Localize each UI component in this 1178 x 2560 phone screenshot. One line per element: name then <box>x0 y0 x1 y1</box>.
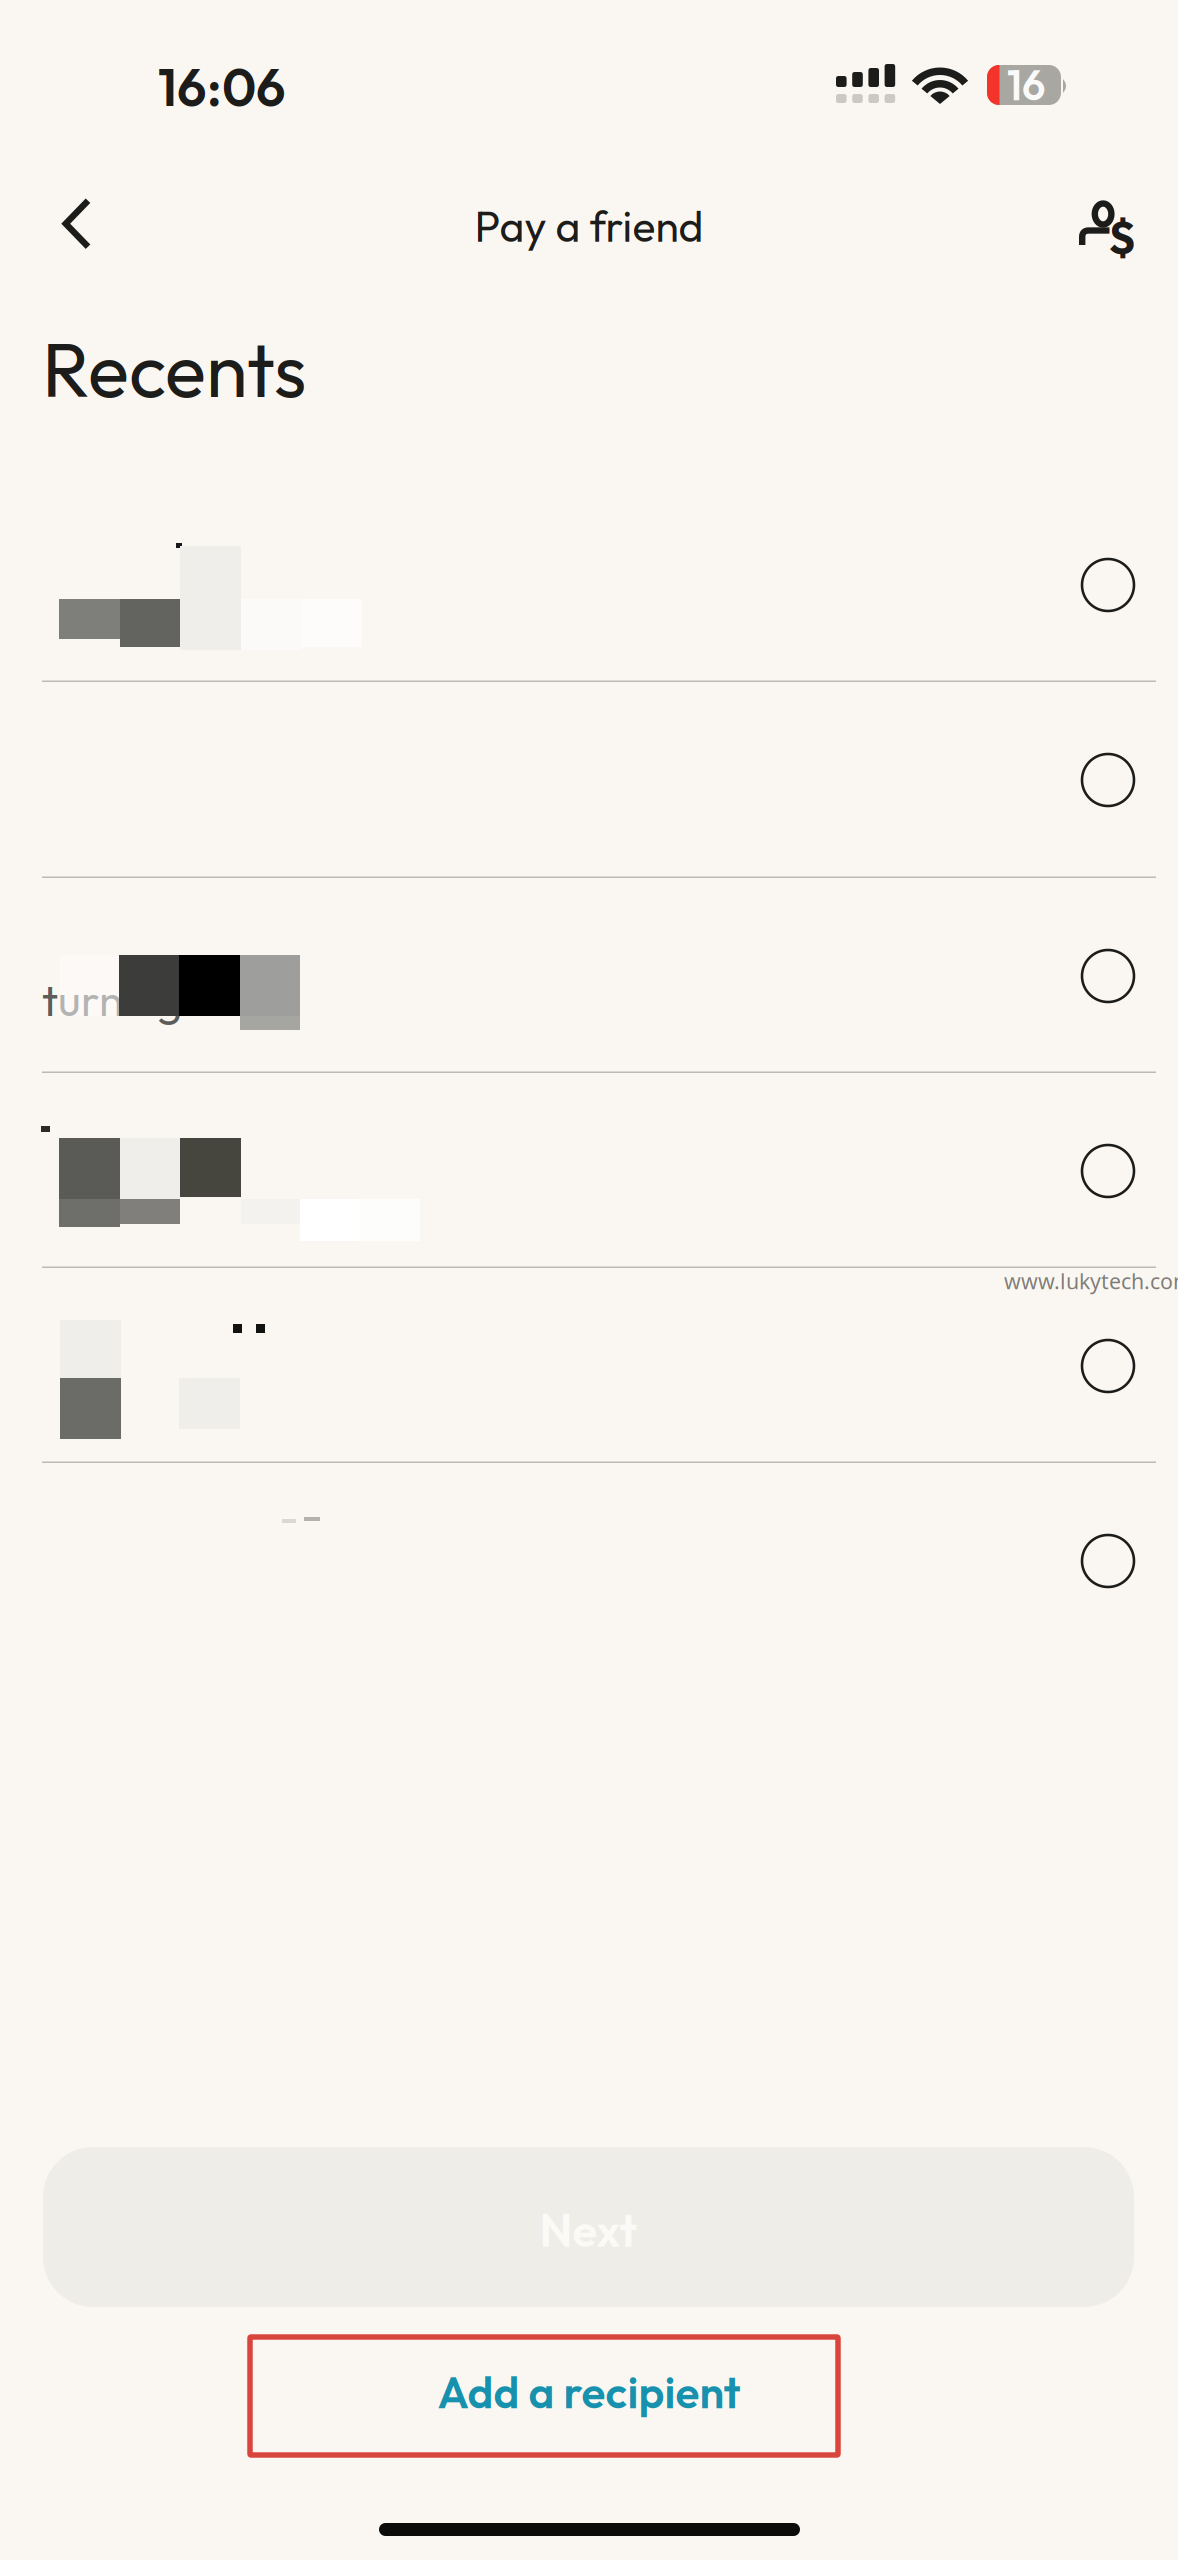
button[interactable]: Recipient 1 <box>0 486 1178 681</box>
button[interactable]: Recipient 6 <box>0 1462 1178 1657</box>
staticText: Add a recipient <box>437 2364 740 2420</box>
staticText: Recents <box>42 321 306 417</box>
staticText: 16:06 <box>158 54 286 119</box>
staticText: turning <box>42 972 182 1027</box>
button[interactable]: Pay a new recipient <box>1052 176 1162 280</box>
button[interactable]: Recipient 5 <box>0 1267 1178 1462</box>
button[interactable]: turning <box>0 877 1178 1072</box>
button[interactable]: Add a recipient <box>0 2337 1178 2455</box>
button[interactable]: Recipient 4 <box>0 1072 1178 1267</box>
staticText: Pay a friend <box>474 199 703 253</box>
staticText: www.lukytech.com <box>1004 1267 1178 1295</box>
staticText: $ <box>1108 208 1135 265</box>
staticText: Next <box>539 2201 637 2258</box>
button[interactable]: Back <box>29 176 125 272</box>
staticText: 16 <box>1007 59 1045 111</box>
button[interactable]: Recipient 2 <box>0 681 1178 876</box>
